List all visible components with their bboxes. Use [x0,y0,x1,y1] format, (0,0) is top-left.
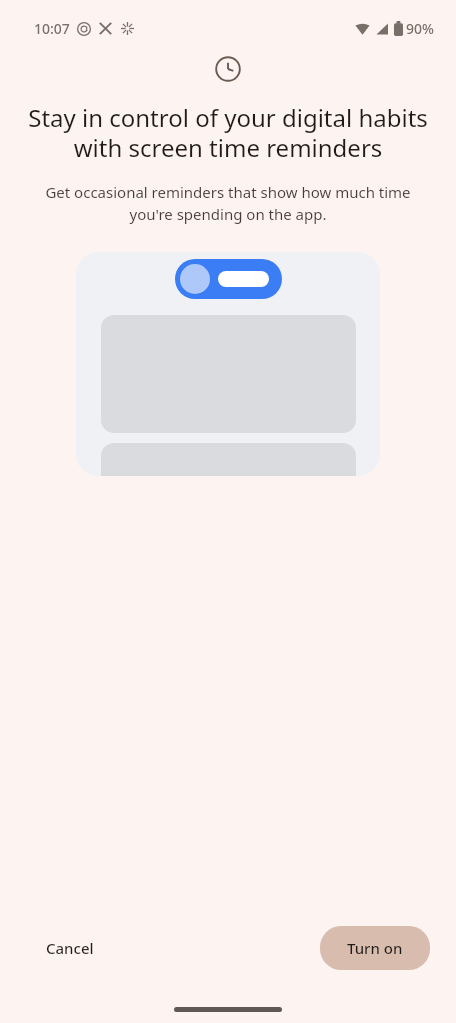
staticText: Stay in control of your digital habits w… [22,101,434,164]
staticText: 90% [406,19,434,38]
button[interactable]: Turn on [320,926,430,970]
staticText: Turn on [347,938,403,958]
staticText: 10:07 [34,19,70,38]
staticText: Cancel [46,938,94,958]
staticText: Get occasional reminders that show how m… [34,182,422,225]
other: Screen time [215,56,241,82]
button[interactable]: Cancel [26,927,114,969]
